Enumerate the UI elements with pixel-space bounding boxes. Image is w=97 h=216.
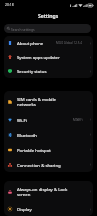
button[interactable]: Security status bbox=[4, 64, 93, 78]
staticText: SIM cards & mobile networks bbox=[17, 96, 73, 107]
staticText: System apps updater bbox=[17, 54, 60, 60]
staticText: Portable hotspot bbox=[17, 147, 51, 153]
button[interactable]: Bluetooth bbox=[4, 127, 93, 142]
staticText: Bluetooth bbox=[17, 132, 37, 138]
staticText: Wi-Fi bbox=[17, 117, 27, 123]
button[interactable]: Wi-Fi bbox=[4, 112, 93, 127]
button[interactable]: Always-on display & Lock screen bbox=[4, 181, 93, 202]
staticText: Security status bbox=[17, 68, 47, 74]
staticText: About phone bbox=[17, 40, 44, 46]
staticText: MIUI Global 12.5.4 bbox=[56, 41, 83, 45]
button[interactable]: Portable hotspot bbox=[4, 142, 93, 157]
button[interactable]: Display bbox=[4, 202, 93, 216]
staticText: 20:18 bbox=[5, 2, 14, 7]
staticText: Always-on display & Lock screen bbox=[17, 186, 73, 197]
staticText: MIWiFi bbox=[73, 118, 83, 122]
staticText: Search settings bbox=[11, 27, 35, 31]
button[interactable]: Connection & sharing bbox=[4, 157, 93, 172]
staticText: Display bbox=[17, 206, 32, 212]
staticText: Settings bbox=[38, 13, 59, 20]
button[interactable]: Search settings bbox=[4, 24, 91, 33]
button[interactable]: SIM cards & mobile networks bbox=[4, 91, 93, 112]
button[interactable]: About phone bbox=[4, 36, 93, 50]
button[interactable]: System apps updater bbox=[4, 50, 93, 64]
staticText: Connection & sharing bbox=[17, 162, 61, 168]
